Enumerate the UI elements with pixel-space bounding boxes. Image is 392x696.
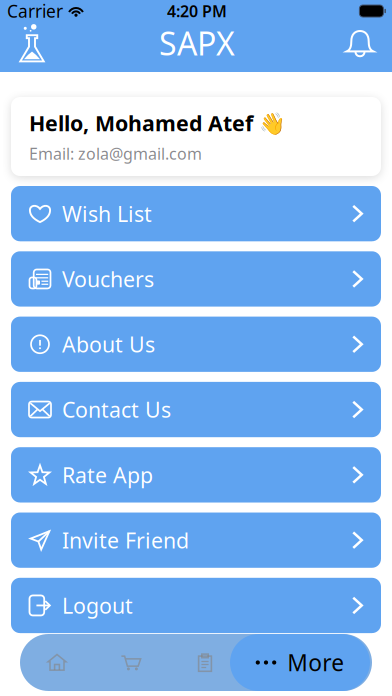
staticText: Wish List <box>62 199 152 228</box>
button[interactable]: Invite Friend <box>11 512 381 568</box>
staticText: SAPX <box>159 22 235 64</box>
button[interactable]: Contact Us <box>11 382 381 437</box>
staticText: 4:20 PM <box>167 0 227 22</box>
button[interactable]: Home <box>20 634 94 691</box>
button[interactable]: Cart <box>94 634 168 691</box>
staticText: More <box>287 647 344 677</box>
staticText: Invite Friend <box>62 526 189 554</box>
staticText: Rate App <box>62 461 153 489</box>
button[interactable]: Orders <box>168 634 242 691</box>
button[interactable]: About Us <box>11 317 381 372</box>
button[interactable]: Notifications <box>342 22 378 64</box>
staticText: Logout <box>62 591 133 620</box>
button[interactable]: Wish List <box>11 186 381 241</box>
button[interactable]: Vouchers <box>11 251 381 307</box>
button[interactable]: Logout <box>11 578 381 633</box>
button[interactable]: Lab <box>12 22 52 64</box>
staticText: Vouchers <box>62 265 154 293</box>
button[interactable]: Rate App <box>11 447 381 502</box>
button[interactable]: More <box>230 634 370 691</box>
staticText: Email: zola@gmail.com <box>29 143 202 164</box>
staticText: Hello, Mohamed Atef 👋 <box>29 109 286 137</box>
staticText: Carrier <box>7 0 63 22</box>
staticText: Contact Us <box>62 395 171 424</box>
staticText: About Us <box>62 330 155 358</box>
